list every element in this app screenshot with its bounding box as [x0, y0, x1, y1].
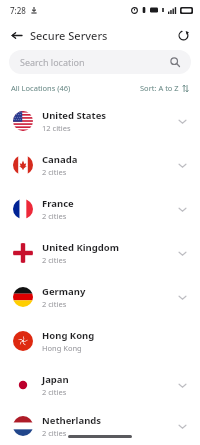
staticText: 2 cities: [42, 167, 67, 177]
staticText: Netherlands: [42, 414, 102, 427]
button[interactable]: France: [0, 187, 200, 231]
button[interactable]: United States: [0, 99, 200, 143]
staticText: Germany: [42, 285, 86, 298]
staticText: Hong Kong: [42, 343, 82, 353]
button[interactable]: Sort: A to Z: [140, 83, 189, 93]
button[interactable]: Germany: [0, 275, 200, 319]
button[interactable]: Hong Kong: [0, 319, 200, 363]
staticText: United States: [42, 109, 107, 122]
staticText: 2 cities: [42, 211, 67, 221]
staticText: Search location: [20, 56, 85, 68]
button[interactable]: United Kingdom: [0, 231, 200, 275]
staticText: 2 cities: [42, 299, 67, 309]
staticText: 2 cities: [42, 387, 67, 397]
staticText: Hong Kong: [42, 329, 95, 342]
staticText: Secure Servers: [30, 28, 108, 43]
staticText: Sort: A to Z: [140, 83, 179, 93]
button[interactable]: Canada: [0, 143, 200, 187]
staticText: France: [42, 197, 74, 210]
button[interactable]: Refresh: [172, 24, 194, 46]
button[interactable]: All Locations (46): [11, 83, 71, 93]
button[interactable]: Search location: [9, 50, 191, 74]
staticText: 7:28: [10, 5, 26, 16]
button[interactable]: Japan: [0, 363, 200, 407]
staticText: Canada: [42, 153, 78, 166]
button[interactable]: Back: [5, 24, 27, 46]
staticText: United Kingdom: [42, 241, 119, 254]
staticText: 2 cities: [42, 255, 67, 265]
staticText: 12 cities: [42, 123, 71, 133]
button[interactable]: Netherlands: [0, 407, 200, 445]
staticText: 2 cities: [42, 428, 67, 438]
staticText: Japan: [42, 373, 69, 386]
